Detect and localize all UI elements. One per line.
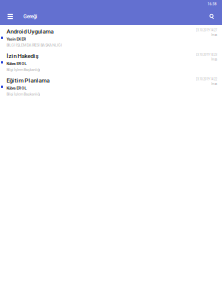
staticText: 16:38 xyxy=(207,2,216,6)
staticText: Gereği xyxy=(23,13,37,20)
button[interactable]: Android Uygulama xyxy=(0,25,222,49)
staticText: Eğitim Planlama xyxy=(6,77,49,84)
staticText: Bilgi İşlem Başkanlığı xyxy=(6,67,40,72)
staticText: Bilgi İşlem Başkanlığı xyxy=(6,92,40,96)
staticText: İmza xyxy=(211,58,218,61)
staticText: Android Uygulama xyxy=(6,28,53,35)
button[interactable]: Eğitim Planlama xyxy=(0,74,222,98)
button[interactable]: Search xyxy=(201,8,222,25)
staticText: Yasin EKER xyxy=(6,37,26,41)
staticText: İmza xyxy=(211,33,218,37)
staticText: 23.10.2019 14:23 xyxy=(196,53,218,56)
staticText: İzin Hakediş xyxy=(6,52,38,59)
staticText: Kübra EROL xyxy=(6,86,26,90)
staticText: Kübra EROL xyxy=(6,61,26,66)
button[interactable]: Menu xyxy=(0,8,20,25)
button[interactable]: İzin Hakediş xyxy=(0,49,222,74)
staticText: BİLGİ İŞLEM DAİRESİ BAŞKANLIĞI xyxy=(6,43,62,47)
staticText: 23.10.2019 14:22 xyxy=(196,78,218,81)
staticText: 23.10.2019 14:27 xyxy=(196,29,218,32)
staticText: İmza xyxy=(211,82,218,86)
